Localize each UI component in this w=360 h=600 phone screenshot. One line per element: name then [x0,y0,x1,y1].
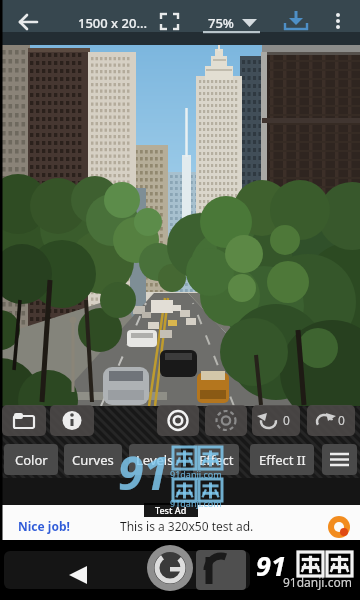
button[interactable]: Nice job! [0,505,360,540]
button[interactable]: Levels [129,444,181,475]
button[interactable] [282,8,310,34]
button[interactable] [58,558,98,592]
button[interactable]: Curves [64,444,122,475]
button[interactable] [252,405,300,436]
staticText: This is a 320x50 test ad. [120,518,254,534]
staticText: 0 [283,412,290,428]
button[interactable] [50,405,94,436]
staticText: Levels [136,451,174,469]
staticText: Color [15,451,48,469]
button[interactable]: Effect [193,444,239,475]
staticText: Nice job! [18,518,70,534]
staticText: Curves [72,451,114,469]
staticText: 75% [208,14,234,32]
button[interactable]: Effect II [250,444,314,475]
button[interactable] [307,405,355,436]
staticText: Test Ad [155,504,187,516]
staticText: 91danji.com [170,497,222,509]
button[interactable] [205,405,247,436]
button[interactable] [328,6,350,32]
staticText: 91danji.com [283,574,352,590]
button[interactable] [12,6,44,32]
staticText: 91danji.com [170,468,222,480]
button[interactable]: Color [4,444,58,475]
button[interactable] [322,444,357,475]
staticText: Effect [199,451,234,469]
staticText: 0 [338,412,345,428]
button[interactable] [157,405,199,436]
staticText: 91 [256,547,286,584]
button[interactable] [2,405,46,436]
staticText: Effect II [259,451,306,469]
button[interactable] [158,10,182,32]
button[interactable]: 75% [200,8,262,34]
staticText: 1500 x 20... [78,14,148,32]
staticText: 91 [118,441,169,504]
